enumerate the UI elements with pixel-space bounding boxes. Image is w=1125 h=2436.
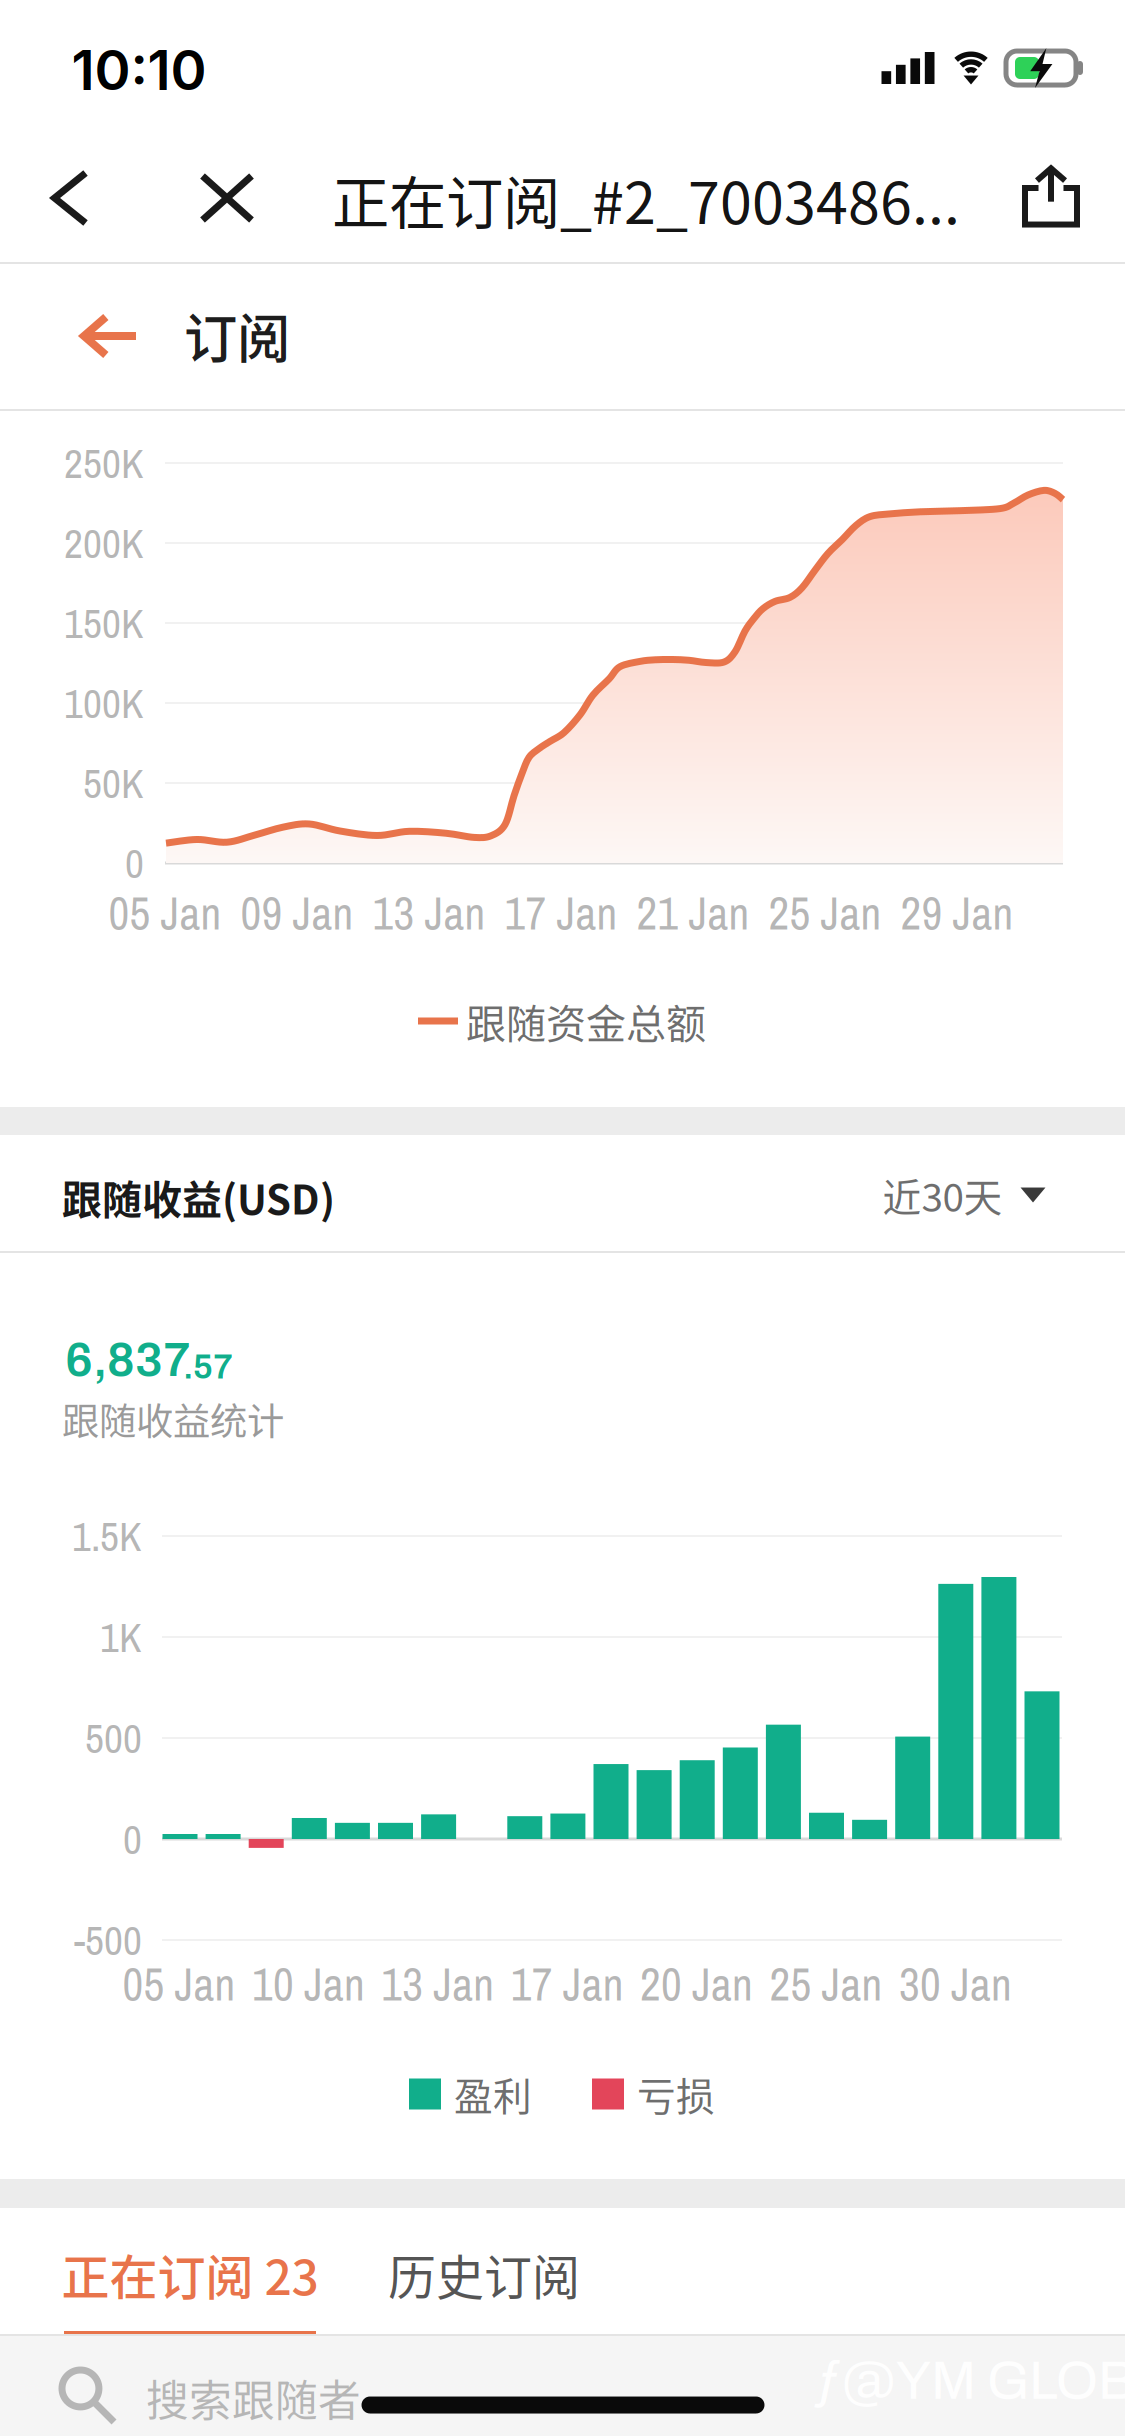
- staticText: 跟随资金总额: [466, 992, 706, 1050]
- staticText: 近30天: [882, 1167, 1002, 1223]
- staticText: 10 Jan: [252, 1953, 365, 2015]
- staticText: 0: [123, 1811, 142, 1867]
- staticText: 17 Jan: [511, 1953, 624, 2015]
- staticText: 200K: [64, 515, 144, 571]
- staticText: 17 Jan: [504, 882, 617, 944]
- staticText: 搜索跟随者: [146, 2367, 361, 2429]
- button[interactable]: 正在订阅 23: [32, 2208, 348, 2336]
- staticText: 盈利: [454, 2066, 532, 2122]
- button[interactable]: 历史订阅: [369, 2208, 599, 2336]
- button[interactable]: 近30天: [849, 1137, 1079, 1253]
- staticText: 正在订阅_#2_7003486...: [332, 157, 960, 240]
- staticText: 6,837: [65, 1334, 191, 1386]
- staticText: 亏损: [637, 2066, 715, 2122]
- staticText: 100K: [64, 675, 144, 731]
- staticText: 500: [85, 1710, 142, 1766]
- staticText: 历史订阅: [388, 2239, 580, 2309]
- staticText: 50K: [83, 755, 144, 811]
- staticText: 25 Jan: [769, 1953, 882, 2015]
- button[interactable]: Share: [991, 134, 1111, 258]
- staticText: -500: [74, 1912, 142, 1968]
- staticText: 订阅: [184, 296, 290, 374]
- button[interactable]: Back: [45, 263, 175, 409]
- staticText: 13 Jan: [372, 882, 485, 944]
- staticText: 05 Jan: [122, 1953, 235, 2015]
- staticText: 跟随收益(USD): [62, 1168, 335, 1226]
- staticText: 05 Jan: [108, 882, 221, 944]
- staticText: 09 Jan: [240, 882, 353, 944]
- staticText: 跟随收益统计: [62, 1392, 284, 1446]
- staticText: 29 Jan: [900, 882, 1013, 944]
- staticText: .57: [183, 1348, 233, 1386]
- staticText: 0: [125, 835, 144, 891]
- button[interactable]: Back: [10, 136, 130, 260]
- staticText: 13 Jan: [381, 1953, 494, 2015]
- staticText: ƒ@YM GLOBAL: [812, 2352, 1125, 2410]
- staticText: 1K: [100, 1609, 142, 1665]
- staticText: 正在订阅 23: [61, 2239, 318, 2309]
- staticText: 25 Jan: [768, 882, 881, 944]
- button[interactable]: Close: [167, 136, 287, 260]
- staticText: 30 Jan: [899, 1953, 1012, 2015]
- staticText: 150K: [64, 595, 144, 651]
- staticText: 1.5K: [72, 1508, 142, 1564]
- staticText: 20 Jan: [640, 1953, 753, 2015]
- staticText: 10:10: [71, 37, 206, 103]
- button[interactable]: 搜索跟随者: [0, 2336, 1125, 2434]
- staticText: 250K: [64, 435, 144, 491]
- staticText: 21 Jan: [636, 882, 749, 944]
